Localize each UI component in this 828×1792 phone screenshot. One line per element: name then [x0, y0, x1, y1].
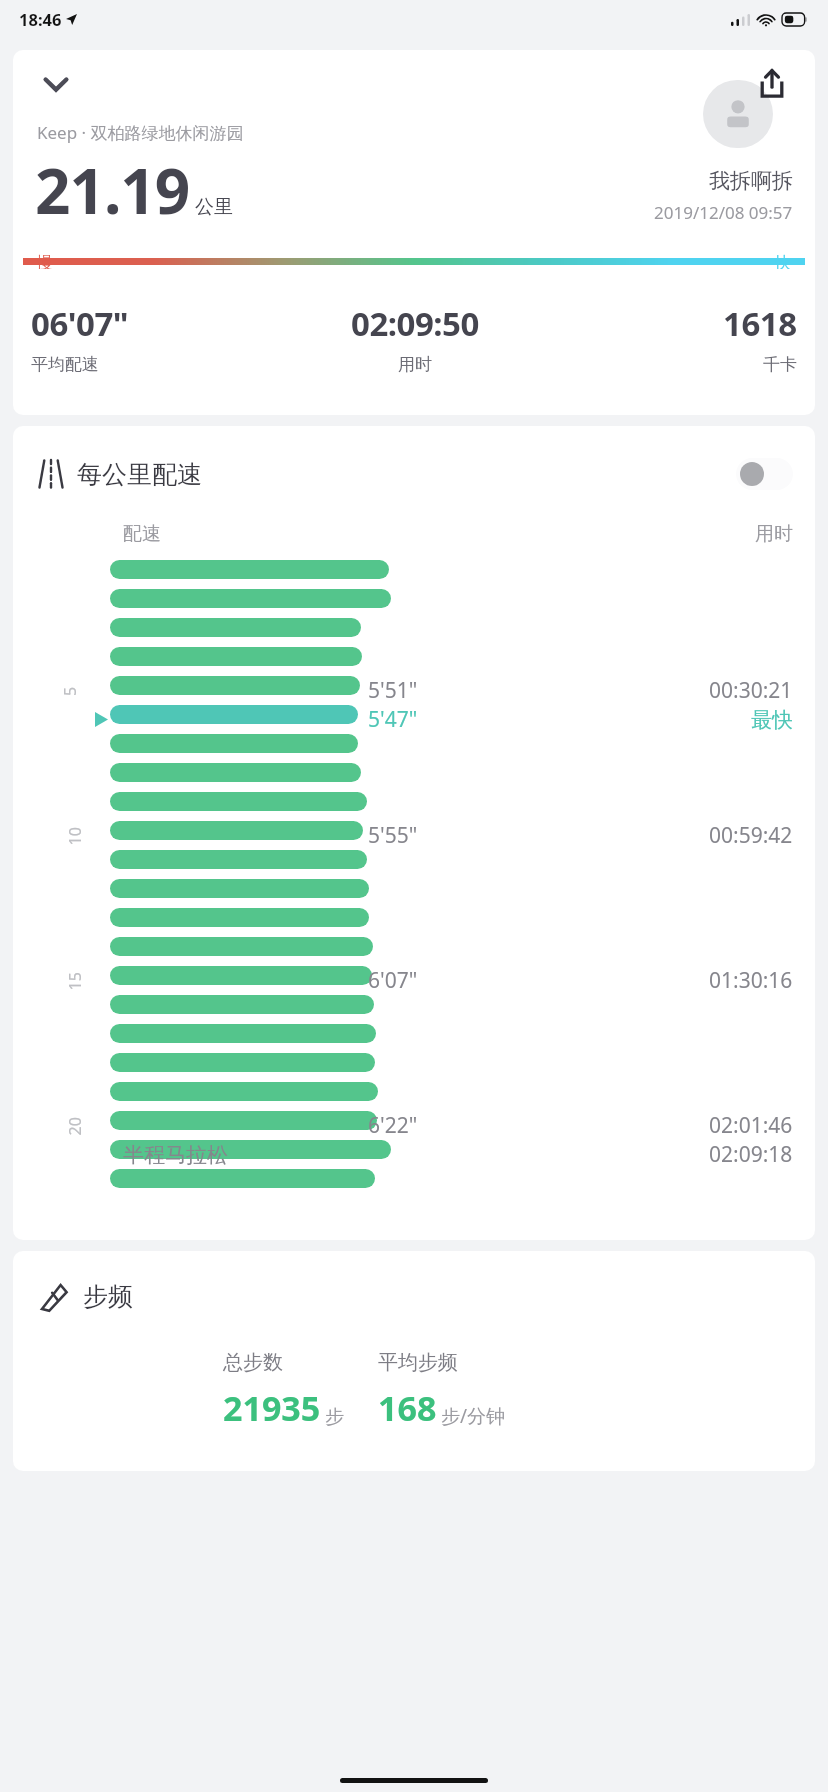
button[interactable]: Share: [741, 52, 803, 114]
staticText: 18:46: [19, 8, 62, 30]
staticText: 21.19: [35, 148, 190, 226]
staticText: 02:01:46: [709, 1111, 793, 1140]
staticText: 20: [63, 1116, 85, 1135]
staticText: 步频: [83, 1281, 133, 1312]
staticText: 00:30:21: [709, 676, 793, 705]
staticText: 步/分钟: [441, 1403, 506, 1429]
staticText: 1618: [723, 301, 797, 346]
staticText: 21935: [223, 1385, 321, 1431]
staticText: 5'55": [368, 821, 418, 850]
staticText: 02:09:50: [351, 301, 479, 346]
staticText: 千卡: [763, 354, 797, 375]
staticText: 平均步频: [378, 1350, 458, 1375]
staticText: 2019/12/08 09:57: [654, 201, 793, 224]
button[interactable]: User avatar: [703, 80, 773, 148]
staticText: 慢: [37, 253, 53, 269]
staticText: 5: [59, 686, 81, 696]
staticText: 06'07": [31, 301, 129, 346]
staticText: 6'07": [368, 966, 418, 995]
staticText: 10: [63, 826, 85, 845]
button[interactable]: Collapse: [26, 54, 86, 114]
staticText: 01:30:16: [709, 966, 793, 995]
staticText: 用时: [755, 522, 793, 546]
button[interactable]: Toggle chart: [736, 458, 793, 490]
staticText: 5'51": [368, 676, 418, 705]
staticText: 02:09:18: [709, 1140, 793, 1169]
staticText: 总步数: [223, 1350, 283, 1375]
staticText: 配速: [123, 522, 161, 546]
staticText: 168: [378, 1385, 437, 1431]
staticText: 最快: [751, 707, 793, 733]
staticText: 6'22": [368, 1111, 418, 1140]
staticText: 平均配速: [31, 354, 99, 375]
staticText: 公里: [195, 195, 233, 219]
staticText: 快: [775, 253, 791, 269]
staticText: 步: [325, 1405, 344, 1429]
staticText: 每公里配速: [77, 459, 202, 490]
staticText: Keep · 双柏路绿地休闲游园: [37, 121, 244, 144]
staticText: 00:59:42: [709, 821, 793, 850]
staticText: 用时: [398, 354, 432, 375]
staticText: 我拆啊拆: [709, 168, 793, 194]
staticText: 半程马拉松: [123, 1142, 228, 1168]
staticText: 15: [63, 971, 85, 990]
staticText: 5'47": [368, 705, 418, 734]
